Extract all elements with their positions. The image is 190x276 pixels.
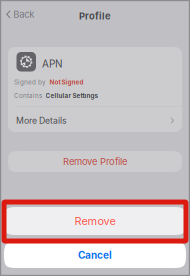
- staticText: Remove Profile: [63, 156, 127, 167]
- staticText: Profile: [79, 10, 111, 22]
- staticText: Signed by: [14, 78, 46, 86]
- staticText: APN: [42, 58, 63, 70]
- button[interactable]: Back: [3, 7, 37, 21]
- staticText: More Details: [16, 115, 67, 126]
- staticText: Cellular Settings: [46, 92, 99, 100]
- button[interactable]: Remove Profile: [8, 151, 182, 172]
- button[interactable]: Cancel: [4, 242, 186, 268]
- staticText: Not Signed: [50, 78, 84, 86]
- staticText: Contains: [14, 92, 42, 100]
- button[interactable]: Remove: [4, 207, 186, 235]
- staticText: Remove: [74, 214, 115, 228]
- staticText: Back: [13, 9, 34, 20]
- button[interactable]: More Details: [8, 107, 182, 133]
- staticText: Cancel: [78, 249, 112, 261]
